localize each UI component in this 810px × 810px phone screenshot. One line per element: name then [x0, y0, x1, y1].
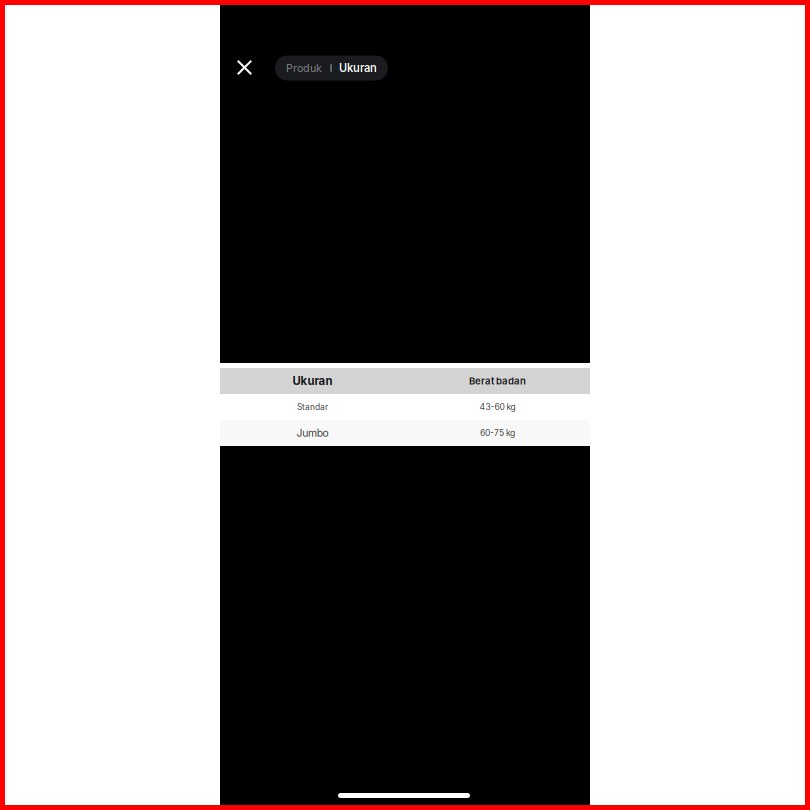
- staticText: Ukuran: [339, 61, 377, 75]
- staticText: 60-75 kg: [480, 428, 515, 438]
- staticText: 43-60 kg: [479, 402, 515, 412]
- button[interactable]: Ukuran: [332, 55, 388, 80]
- staticText: Ukuran: [292, 374, 332, 388]
- staticText: Standar: [297, 402, 328, 412]
- button[interactable]: Close: [225, 48, 263, 86]
- staticText: Produk: [286, 61, 322, 74]
- button[interactable]: Produk: [275, 55, 330, 80]
- staticText: Jumbo: [296, 427, 328, 439]
- staticText: Berat badan: [469, 375, 526, 387]
